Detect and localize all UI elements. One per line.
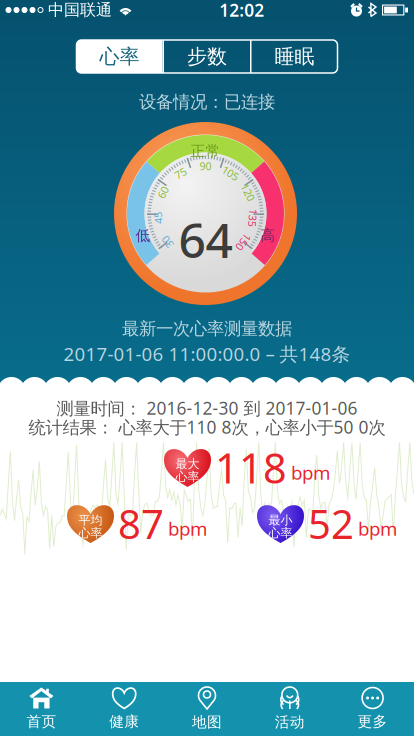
staticText: 平均: [78, 513, 102, 527]
staticText: 测量时间： 2016-12-30 到 2017-01-06: [56, 396, 357, 419]
button[interactable]: 更多: [331, 682, 414, 736]
staticText: 45: [152, 211, 164, 225]
staticText: 最小: [268, 513, 292, 527]
staticText: 30: [162, 235, 174, 249]
staticText: 心率: [268, 526, 292, 540]
staticText: 90: [199, 159, 211, 173]
staticText: 首页: [26, 712, 56, 730]
staticText: 心率: [99, 44, 139, 69]
staticText: 120: [239, 185, 257, 199]
staticText: 统计结果： 心率大于110 8次，心率小于50 0次: [28, 415, 385, 438]
staticText: 75: [174, 166, 186, 180]
staticText: 150: [234, 235, 252, 249]
button[interactable]: 心率: [76, 40, 162, 73]
staticText: 高: [260, 226, 275, 244]
staticText: 地图: [192, 713, 222, 731]
staticText: 活动: [275, 713, 305, 731]
staticText: 睡眠: [274, 44, 314, 69]
staticText: bpm: [291, 460, 330, 485]
button[interactable]: 活动: [248, 682, 331, 736]
staticText: 步数: [187, 44, 227, 69]
staticText: 87: [118, 497, 164, 550]
staticText: 正常: [190, 142, 220, 160]
staticText: 心率: [175, 469, 199, 484]
staticText: bpm: [358, 516, 397, 541]
staticText: bpm: [168, 516, 207, 541]
button[interactable]: 地图: [166, 682, 248, 736]
staticText: 最新一次心率测量数据: [122, 318, 292, 339]
staticText: 中国联通: [48, 0, 112, 20]
staticText: 心率: [78, 526, 102, 540]
staticText: 健康: [109, 712, 139, 730]
staticText: 12:02: [219, 0, 264, 21]
staticText: 64: [178, 208, 232, 271]
staticText: 52: [308, 497, 354, 550]
staticText: 更多: [358, 712, 388, 730]
staticText: 135: [244, 211, 262, 225]
staticText: 2017-01-06 11:00:00.0 – 共148条: [63, 341, 350, 366]
staticText: 60: [157, 185, 169, 199]
staticText: 105: [221, 166, 239, 180]
button[interactable]: 步数: [164, 40, 250, 73]
button[interactable]: 睡眠: [251, 40, 337, 73]
staticText: 最大: [175, 457, 199, 471]
button[interactable]: 首页: [0, 682, 83, 736]
staticText: 低: [135, 226, 150, 244]
staticText: 118: [215, 440, 287, 495]
button[interactable]: 健康: [83, 682, 166, 736]
staticText: 设备情况：已连接: [139, 91, 275, 113]
